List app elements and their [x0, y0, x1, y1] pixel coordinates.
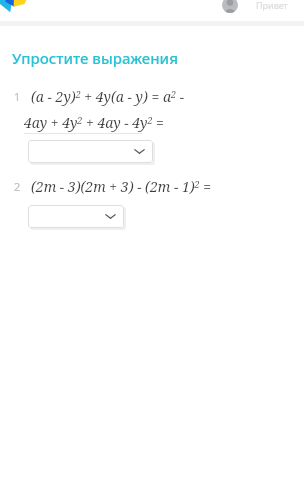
- staticText: Привет: [256, 0, 288, 11]
- staticText: 2: [14, 179, 21, 194]
- button[interactable]: Select answer: [28, 140, 153, 163]
- staticText: Упростите выражения: [12, 48, 178, 68]
- button[interactable]: Select answer: [28, 205, 124, 228]
- button[interactable]: Logo: [0, 0, 34, 13]
- staticText: 4ay + 4y2 + 4ay − 4y2 =: [24, 113, 164, 132]
- button[interactable]: Account: [222, 0, 238, 13]
- staticText: 1: [14, 89, 21, 104]
- staticText: (2m − 3)(2m + 3) − (2m − 1)2 =: [31, 177, 212, 196]
- staticText: (a − 2y)2 + 4y(a − y) = a2 −: [31, 87, 185, 106]
